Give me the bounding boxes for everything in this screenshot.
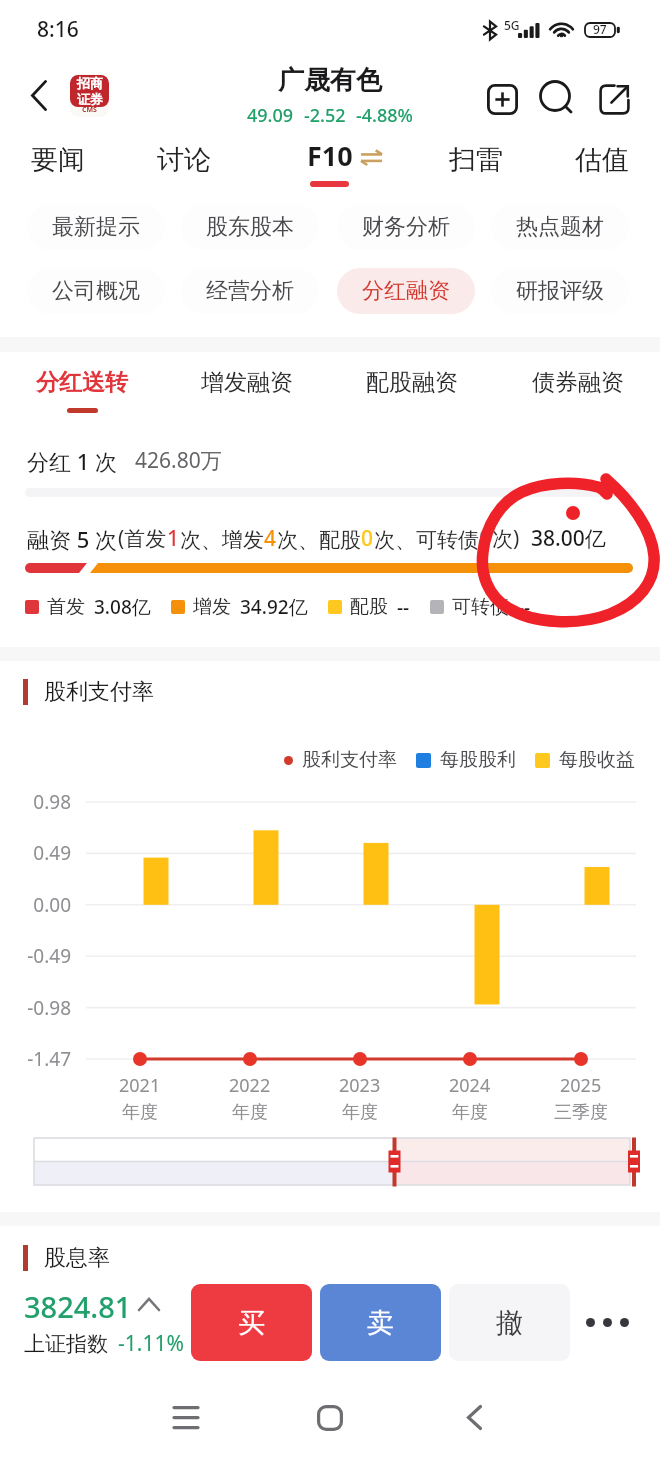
staticText: 38.00亿 bbox=[531, 524, 606, 553]
staticText: 撤 bbox=[496, 1306, 523, 1340]
button[interactable]: Back bbox=[14, 70, 64, 120]
button[interactable]: 扫雷 bbox=[424, 134, 528, 186]
staticText: 2023 bbox=[339, 1073, 381, 1098]
button[interactable]: Add bbox=[478, 75, 526, 123]
staticText: 每股股利 bbox=[440, 748, 516, 772]
staticText: 分红送转 bbox=[36, 368, 128, 397]
staticText: 股利支付率 bbox=[302, 748, 397, 772]
staticText: 上证指数 bbox=[24, 1331, 108, 1357]
staticText: -1.11% bbox=[118, 1329, 184, 1358]
button[interactable]: 分红融资 bbox=[337, 268, 475, 314]
staticText: 配股融资 bbox=[366, 368, 458, 397]
staticText: 次、增发 bbox=[180, 527, 264, 553]
button[interactable]: Share bbox=[590, 75, 638, 123]
staticText: 0.00 bbox=[0, 892, 71, 918]
staticText: -2.52 bbox=[304, 103, 346, 128]
staticText: 2025 bbox=[560, 1073, 602, 1098]
staticText: 分红融资 bbox=[362, 277, 450, 305]
button[interactable]: 配股融资 bbox=[340, 356, 484, 408]
staticText: 增发融资 bbox=[201, 368, 293, 397]
staticText: 证券 bbox=[77, 91, 103, 107]
staticText: 买 bbox=[238, 1306, 265, 1340]
staticText: 研报评级 bbox=[516, 277, 604, 305]
staticText: 34.92亿 bbox=[240, 594, 308, 620]
staticText: -4.88% bbox=[356, 103, 413, 128]
staticText: 热点题材 bbox=[516, 213, 604, 241]
button[interactable]: Back bbox=[434, 1377, 514, 1457]
staticText: 经营分析 bbox=[206, 277, 294, 305]
button[interactable]: Search bbox=[533, 75, 581, 123]
button[interactable]: 买 bbox=[191, 1284, 312, 1361]
button[interactable]: 3824.81 bbox=[24, 1287, 194, 1358]
staticText: -0.98 bbox=[0, 995, 71, 1021]
button[interactable]: 公司概况 bbox=[27, 268, 165, 314]
staticText: 426.80万 bbox=[135, 446, 222, 475]
staticText: 次、配股 bbox=[277, 527, 361, 553]
staticText: 分红 1 次 bbox=[27, 446, 118, 476]
staticText: 每股收益 bbox=[559, 748, 635, 772]
staticText: 股东股本 bbox=[206, 213, 294, 241]
staticText: -1.47 bbox=[0, 1046, 71, 1072]
button[interactable]: More bbox=[571, 1284, 643, 1361]
staticText: 招商 bbox=[77, 75, 103, 91]
staticText: 2024 bbox=[449, 1073, 491, 1098]
staticText: 股利支付率 bbox=[44, 678, 154, 706]
staticText: 次、可转债 bbox=[374, 527, 479, 553]
staticText: 三季度 bbox=[554, 1101, 608, 1124]
button[interactable]: 财务分析 bbox=[337, 204, 475, 250]
staticText: 广晟有色 bbox=[278, 64, 382, 97]
button[interactable]: 要闻 bbox=[6, 134, 110, 186]
button[interactable]: 估值 bbox=[550, 134, 654, 186]
staticText: 股息率 bbox=[44, 1244, 110, 1272]
staticText: 97 bbox=[593, 21, 607, 37]
staticText: 0 bbox=[361, 524, 374, 553]
staticText: 0.49 bbox=[0, 840, 71, 866]
staticText: 扫雷 bbox=[449, 143, 503, 177]
button[interactable]: 最新提示 bbox=[27, 204, 165, 250]
button[interactable]: 热点题材 bbox=[491, 204, 629, 250]
staticText: 卖 bbox=[367, 1306, 394, 1340]
staticText: 配股 bbox=[350, 595, 388, 619]
staticText: 次) bbox=[492, 524, 520, 553]
staticText: 2022 bbox=[229, 1073, 271, 1098]
staticText: 年度 bbox=[452, 1101, 488, 1124]
button[interactable]: 分红送转 bbox=[10, 356, 154, 408]
staticText: 1 bbox=[167, 524, 180, 553]
button[interactable]: 撤 bbox=[449, 1284, 570, 1361]
button[interactable]: 研报评级 bbox=[491, 268, 629, 314]
button[interactable]: 债券融资 bbox=[506, 356, 650, 408]
staticText: 4 bbox=[264, 524, 277, 553]
staticText: 年度 bbox=[122, 1101, 158, 1124]
staticText: 要闻 bbox=[31, 143, 85, 177]
staticText: -0.49 bbox=[0, 943, 71, 969]
staticText: CMS bbox=[82, 105, 97, 115]
staticText: F10 bbox=[307, 137, 353, 174]
staticText: 可转债 bbox=[452, 595, 509, 619]
button[interactable]: Recent apps bbox=[146, 1377, 226, 1457]
staticText: 财务分析 bbox=[362, 213, 450, 241]
staticText: 讨论 bbox=[157, 143, 211, 177]
staticText: 首发 bbox=[47, 595, 85, 619]
button[interactable]: 股东股本 bbox=[181, 204, 319, 250]
staticText: 0.98 bbox=[0, 789, 71, 815]
button[interactable]: 讨论 bbox=[132, 134, 236, 186]
button[interactable]: 卖 bbox=[320, 1284, 441, 1361]
staticText: -- bbox=[397, 594, 410, 620]
staticText: 8:16 bbox=[37, 15, 79, 44]
staticText: 增发 bbox=[193, 595, 231, 619]
staticText: 3.08亿 bbox=[94, 594, 151, 620]
staticText: 49.09 bbox=[247, 103, 294, 128]
button[interactable]: F10 bbox=[278, 134, 398, 186]
button[interactable]: 经营分析 bbox=[181, 268, 319, 314]
staticText: 融资 5 次 bbox=[27, 524, 118, 554]
staticText: 2021 bbox=[119, 1073, 161, 1098]
button[interactable]: Home bbox=[290, 1378, 370, 1458]
staticText: 债券融资 bbox=[532, 368, 624, 397]
staticText: 估值 bbox=[575, 143, 629, 177]
button[interactable]: CMS bbox=[70, 74, 109, 117]
staticText: -- bbox=[518, 594, 531, 620]
button[interactable]: 增发融资 bbox=[175, 356, 319, 408]
staticText: 年度 bbox=[232, 1101, 268, 1124]
staticText: 年度 bbox=[342, 1101, 378, 1124]
staticText: 最新提示 bbox=[52, 213, 140, 241]
